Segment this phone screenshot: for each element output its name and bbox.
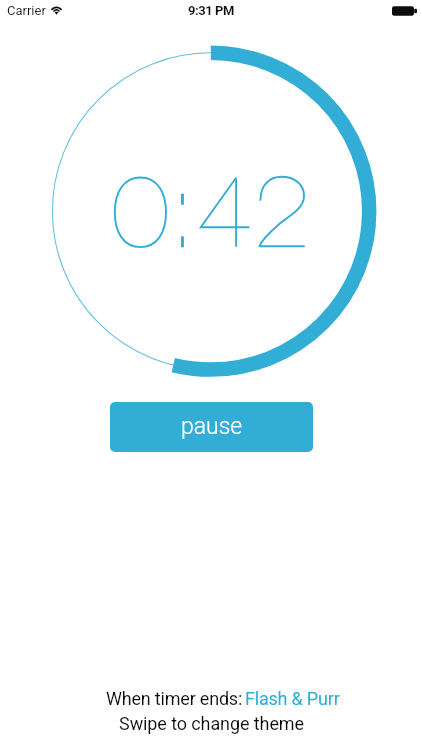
staticText: 9:31 PM <box>188 3 234 18</box>
staticText: When timer ends: <box>106 688 243 709</box>
button[interactable]: Flash & Purr <box>245 688 340 709</box>
staticText: pause <box>181 413 243 440</box>
staticText: Swipe to change theme <box>119 713 304 734</box>
button[interactable]: pause <box>110 402 313 452</box>
staticText: Carrier <box>7 3 46 18</box>
